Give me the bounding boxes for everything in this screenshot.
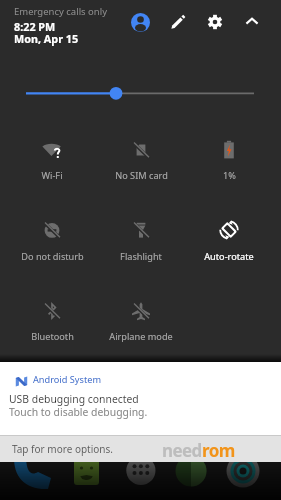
staticText: 1%	[223, 169, 236, 182]
button[interactable]: Tap for more options.	[0, 436, 281, 462]
staticText: Mon, Apr 15	[14, 31, 79, 46]
staticText: Do not disturb	[21, 250, 84, 263]
button[interactable]: Collapse	[242, 12, 262, 32]
staticText: rom	[202, 439, 235, 462]
button[interactable]: 1%	[185, 130, 273, 184]
button[interactable]: Wi-Fi	[8, 130, 96, 184]
staticText: Wi-Fi	[41, 169, 63, 182]
staticText: Touch to disable debugging.	[9, 405, 148, 419]
button[interactable]: Flashlight	[97, 210, 185, 265]
staticText: Emergency calls only	[14, 5, 108, 18]
button[interactable]: User	[131, 13, 150, 32]
button[interactable]: Android System	[0, 362, 281, 435]
button[interactable]: Settings	[205, 12, 225, 32]
staticText: USB debugging connected	[9, 392, 139, 406]
button[interactable]: Do not disturb	[8, 210, 96, 265]
button[interactable]: Bluetooth	[8, 291, 96, 345]
staticText: Tap for more options.	[12, 442, 113, 456]
button[interactable]: Edit	[168, 12, 188, 32]
staticText: need	[162, 439, 202, 462]
staticText: Android System	[33, 373, 101, 386]
staticText: Airplane mode	[109, 330, 173, 343]
staticText: Auto-rotate	[204, 250, 254, 263]
button[interactable]: No SIM card	[97, 130, 185, 184]
staticText: Bluetooth	[31, 330, 74, 343]
staticText: No SIM card	[115, 169, 168, 182]
staticText: 8:22 PM	[14, 19, 56, 34]
button[interactable]: Airplane mode	[97, 291, 185, 345]
button[interactable]: Auto-rotate	[185, 210, 273, 265]
staticText: Flashlight	[120, 250, 162, 263]
button[interactable]: Brightness	[0, 82, 281, 104]
